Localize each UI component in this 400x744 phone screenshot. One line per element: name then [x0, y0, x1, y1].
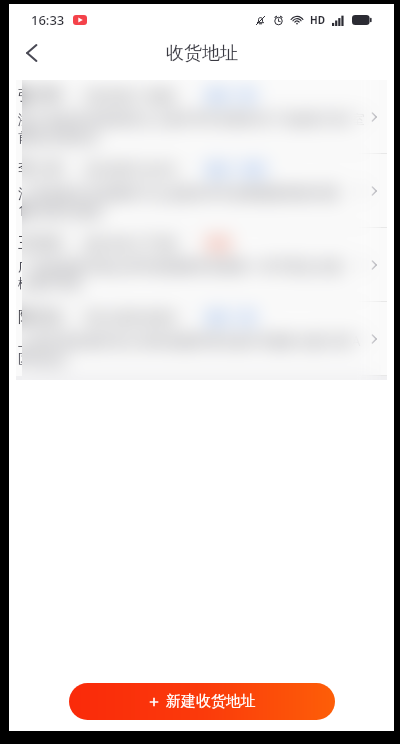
- staticText: 186 4412 7738: [81, 234, 177, 253]
- staticText: 收货地址: [166, 42, 238, 65]
- staticText: 186 4412 7738: [81, 234, 177, 253]
- staticText: 广东省深圳市南山区科技园南区高新南一道飞亚达大厦七楼703室: [18, 258, 365, 292]
- staticText: 陈思远: [22, 308, 63, 327]
- staticText: HD: [310, 13, 325, 27]
- staticText: 张伟明: [18, 86, 63, 105]
- button[interactable]: 张伟明: [16, 80, 387, 154]
- button[interactable]: 张伟明: [22, 80, 375, 154]
- button[interactable]: 王海涛: [16, 228, 387, 302]
- staticText: 广东省深圳市南山区科技园南区高新南一道飞亚达大厦七楼703室: [22, 258, 353, 292]
- staticText: 159 2290 6654: [81, 308, 177, 327]
- staticText: 陈思远: [18, 308, 63, 327]
- button[interactable]: 李小冉: [16, 154, 387, 228]
- staticText: 139 0873 2210: [81, 160, 177, 179]
- staticText: 上海市浦东新区张江高科技园区博云路2号浦软大厦12层A区前台: [22, 332, 353, 368]
- button[interactable]: 新建收货地址: [69, 683, 335, 720]
- button[interactable]: Back: [11, 32, 53, 74]
- staticText: 139 0873 2210: [81, 160, 177, 179]
- staticText: 浙江省杭州市西湖区文三路478号华星时代广场A座1203室前台收转交: [22, 110, 353, 146]
- staticText: 上海市浦东新区张江高科技园区博云路2号浦软大厦12层A区前台: [18, 332, 365, 368]
- staticText: 江苏省南京市鼓楼区中山北路200号金鹰国际商城18层1806室行政部: [18, 184, 365, 220]
- staticText: 159 2290 6654: [81, 308, 177, 327]
- staticText: 王海涛: [22, 234, 63, 253]
- button[interactable]: 陈思远: [22, 302, 375, 376]
- staticText: 16:33: [31, 11, 65, 29]
- staticText: 李小冉: [18, 160, 63, 179]
- staticText: 138 6621 4482: [81, 86, 177, 105]
- button[interactable]: 王海涛: [22, 228, 375, 302]
- button[interactable]: 李小冉: [22, 154, 375, 228]
- button[interactable]: 陈思远: [16, 302, 387, 376]
- staticText: 王海涛: [18, 234, 63, 253]
- staticText: 张伟明: [22, 86, 63, 105]
- staticText: 江苏省南京市鼓楼区中山北路200号金鹰国际商城18层1806室行政部: [22, 184, 353, 220]
- staticText: 浙江省杭州市西湖区文三路478号华星时代广场A座1203室前台收转交: [18, 110, 365, 146]
- staticText: 新建收货地址: [166, 692, 256, 711]
- staticText: 138 6621 4482: [81, 86, 177, 105]
